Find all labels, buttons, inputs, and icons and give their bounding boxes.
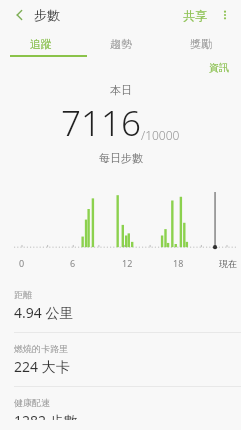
staticText: 12 bbox=[122, 257, 133, 269]
staticText: 燃燒的卡路里 bbox=[14, 343, 68, 354]
staticText: 0 bbox=[19, 257, 25, 269]
staticText: 4.94 公里 bbox=[14, 303, 74, 322]
staticText: 224 大卡 bbox=[14, 357, 70, 376]
button[interactable]: 趨勢 bbox=[81, 30, 161, 57]
staticText: 步數 bbox=[34, 7, 60, 23]
staticText: 現在 bbox=[219, 258, 237, 269]
staticText: /10000 bbox=[141, 127, 180, 143]
button[interactable]: 獎勵 bbox=[161, 30, 241, 57]
staticText: 資訊 bbox=[209, 61, 229, 74]
button[interactable]: 資訊 bbox=[205, 59, 233, 76]
staticText: 共享 bbox=[183, 8, 207, 23]
staticText: 1282 步數 bbox=[14, 411, 78, 420]
staticText: 每日步數 bbox=[99, 151, 143, 165]
button[interactable]: 追蹤 bbox=[0, 30, 81, 57]
staticText: 7116 bbox=[61, 99, 141, 147]
staticText: 趨勢 bbox=[110, 37, 132, 51]
staticText: 健康配速 bbox=[14, 397, 50, 408]
button[interactable]: 燃燒的卡路里 bbox=[0, 333, 241, 386]
staticText: 獎勵 bbox=[190, 37, 212, 51]
button[interactable]: 健康配速 bbox=[0, 387, 241, 430]
button[interactable]: More options bbox=[213, 3, 237, 27]
button[interactable]: Back bbox=[8, 3, 32, 27]
staticText: 追蹤 bbox=[30, 37, 52, 51]
button[interactable]: 距離 bbox=[0, 279, 241, 332]
staticText: 本日 bbox=[110, 83, 132, 97]
staticText: 18 bbox=[173, 257, 184, 269]
button[interactable]: 共享 bbox=[177, 4, 213, 27]
staticText: 距離 bbox=[14, 289, 32, 300]
staticText: 6 bbox=[70, 257, 76, 269]
